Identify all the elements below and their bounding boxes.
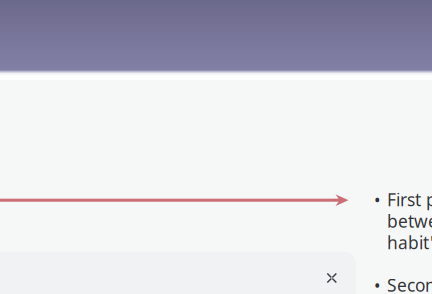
staticText: Secon — [387, 273, 432, 294]
staticText: betwe — [387, 209, 432, 232]
staticText: First p — [387, 188, 432, 211]
button[interactable]: Close — [316, 262, 348, 294]
staticText: habit" — [387, 231, 432, 254]
staticText: • — [374, 273, 381, 294]
staticText: • — [374, 188, 381, 211]
